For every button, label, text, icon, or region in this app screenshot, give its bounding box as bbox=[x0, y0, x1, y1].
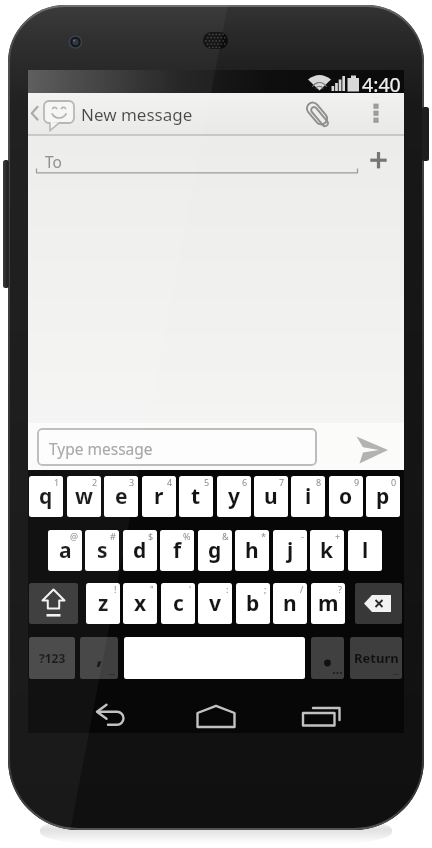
staticText: v bbox=[209, 589, 221, 618]
button[interactable]: r bbox=[142, 476, 176, 517]
button[interactable]: Return bbox=[350, 637, 402, 679]
staticText: 8 bbox=[316, 476, 322, 488]
staticText: i bbox=[305, 482, 312, 511]
staticText: : bbox=[226, 583, 229, 595]
button[interactable]: n bbox=[273, 583, 307, 624]
staticText: 1 bbox=[54, 476, 60, 488]
button[interactable]: z bbox=[86, 583, 120, 624]
button[interactable] bbox=[124, 637, 305, 679]
button[interactable]: u bbox=[254, 476, 288, 517]
staticText: j bbox=[287, 536, 294, 565]
button[interactable]: m bbox=[311, 583, 345, 624]
staticText: 0 bbox=[391, 476, 397, 488]
button[interactable]: b bbox=[236, 583, 270, 624]
button[interactable] bbox=[355, 583, 402, 624]
staticText: ' bbox=[189, 583, 192, 595]
staticText: y bbox=[228, 482, 240, 511]
button[interactable] bbox=[292, 695, 348, 737]
staticText: To bbox=[45, 151, 62, 172]
staticText: z bbox=[98, 589, 109, 618]
button[interactable] bbox=[366, 144, 400, 176]
staticText: h bbox=[245, 536, 259, 565]
button[interactable]: d bbox=[123, 530, 157, 571]
staticText: New message bbox=[81, 103, 193, 126]
button[interactable]: h bbox=[235, 530, 269, 571]
staticText: f bbox=[173, 536, 182, 565]
staticText: ; bbox=[264, 583, 267, 595]
staticText: p bbox=[376, 482, 390, 511]
staticText: w bbox=[75, 482, 93, 511]
staticText: Type message bbox=[49, 438, 153, 459]
staticText: / bbox=[300, 583, 304, 595]
staticText: o bbox=[339, 482, 353, 511]
button[interactable] bbox=[311, 637, 344, 679]
staticText: x bbox=[134, 589, 147, 618]
button[interactable]: o bbox=[329, 476, 363, 517]
staticText: 4:40 bbox=[362, 71, 401, 98]
staticText: b bbox=[246, 589, 260, 618]
button[interactable]: s bbox=[85, 530, 119, 571]
staticText: e bbox=[115, 482, 128, 511]
staticText: * bbox=[261, 530, 266, 542]
button[interactable]: , bbox=[80, 637, 118, 679]
button[interactable] bbox=[37, 428, 317, 466]
staticText: ?123 bbox=[39, 650, 66, 666]
staticText: 6 bbox=[242, 476, 248, 488]
staticText: 2 bbox=[92, 476, 98, 488]
staticText: ? bbox=[338, 583, 342, 595]
staticText: # bbox=[110, 530, 116, 542]
button[interactable]: w bbox=[67, 476, 101, 517]
staticText: k bbox=[320, 536, 334, 565]
button[interactable]: f bbox=[160, 530, 194, 571]
button[interactable]: t bbox=[179, 476, 213, 517]
button[interactable]: q bbox=[29, 476, 63, 517]
staticText: ! bbox=[114, 583, 117, 595]
button[interactable] bbox=[29, 583, 78, 624]
button[interactable] bbox=[364, 96, 390, 132]
staticText: r bbox=[154, 482, 164, 511]
button[interactable]: a bbox=[48, 530, 82, 571]
button[interactable]: k bbox=[310, 530, 344, 571]
button[interactable] bbox=[36, 140, 366, 180]
staticText: a bbox=[59, 536, 72, 565]
staticText: + bbox=[335, 530, 341, 542]
staticText: " bbox=[150, 583, 154, 595]
staticText: l bbox=[362, 536, 369, 565]
button[interactable]: l bbox=[348, 530, 382, 571]
staticText: & bbox=[222, 530, 229, 542]
button[interactable] bbox=[188, 695, 244, 737]
staticText: s bbox=[97, 536, 108, 565]
button[interactable]: y bbox=[217, 476, 251, 517]
button[interactable] bbox=[344, 428, 396, 468]
button[interactable] bbox=[28, 93, 80, 134]
staticText: Return bbox=[354, 649, 399, 667]
staticText: t bbox=[191, 482, 201, 511]
staticText: 3 bbox=[129, 476, 135, 488]
button[interactable]: e bbox=[104, 476, 138, 517]
staticText: c bbox=[173, 589, 184, 618]
button[interactable]: v bbox=[198, 583, 232, 624]
staticText: u bbox=[264, 482, 278, 511]
staticText: d bbox=[133, 536, 147, 565]
staticText: @ bbox=[70, 530, 79, 542]
button[interactable] bbox=[80, 695, 136, 737]
staticText: , bbox=[96, 638, 103, 671]
button[interactable]: x bbox=[123, 583, 157, 624]
button[interactable]: c bbox=[161, 583, 195, 624]
staticText: q bbox=[39, 482, 53, 511]
button[interactable] bbox=[300, 96, 332, 132]
button[interactable]: g bbox=[198, 530, 232, 571]
staticText: 9 bbox=[354, 476, 360, 488]
staticText: n bbox=[283, 589, 297, 618]
staticText: ... bbox=[393, 668, 399, 678]
staticText: 5 bbox=[204, 476, 210, 488]
staticText: - bbox=[301, 530, 304, 542]
button[interactable]: p bbox=[366, 476, 400, 517]
staticText: 7 bbox=[279, 476, 285, 488]
staticText: 4 bbox=[167, 476, 173, 488]
button[interactable]: i bbox=[291, 476, 325, 517]
staticText: % bbox=[183, 530, 191, 542]
staticText: $ bbox=[148, 530, 154, 542]
button[interactable]: j bbox=[273, 530, 307, 571]
button[interactable]: ?123 bbox=[29, 637, 75, 679]
